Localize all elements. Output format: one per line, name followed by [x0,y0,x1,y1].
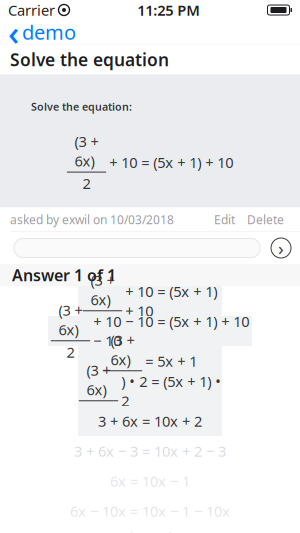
staticText: (3 + 6x) [90,270,114,309]
staticText: asked by exwil on 10/03/2018 [10,211,174,227]
staticText: 2 [94,402,102,422]
staticText [55,2,58,18]
staticText: 6x − 10x = 10x − 1 − 10x [70,501,230,521]
staticText: = 5x + 1 [145,351,197,371]
staticText: 3 + 6x − 3 = 10x + 2 − 3 [74,441,226,461]
staticText: 2 [82,174,90,193]
staticText: (3 + 6x) [110,330,134,369]
staticText: Solve the equation: [31,99,132,114]
staticText: 11:25 PM [137,0,200,20]
staticText: Carrier [8,0,55,20]
button[interactable] [14,238,260,257]
staticText: (3 + 6x) [86,360,110,399]
staticText: › [278,236,284,260]
staticText: (3 + 6x) [58,300,82,339]
button[interactable]: Edit [208,207,241,231]
staticText: Solve the equation [10,48,169,71]
staticText: ) • 2 = (5x + 1) • 2 [121,371,221,410]
staticText: + 10 = (5x + 1) + 10 [109,153,233,172]
staticText: 2 [66,342,74,362]
staticText: 2 [98,312,106,332]
staticText: (3 + 6x) [74,132,98,171]
staticText: Delete [247,211,284,227]
button[interactable]: ‹ [0,20,86,44]
staticText: demo [22,19,76,45]
staticText: 3 + 6x = 10x + 2 [98,411,202,431]
staticText: 2 [118,372,126,392]
staticText: 6x = 10x − 1 [110,471,190,491]
staticText: + 10 = (5x + 1) + 10 [125,281,217,320]
staticText: + 10 − 10 = (5x + 1) + 10 − 10 [93,311,249,350]
staticText: Edit [214,211,235,227]
staticText: Answer 1 of 1 [12,264,116,286]
button[interactable]: Submit answer [268,235,294,261]
button[interactable]: Delete [241,207,290,231]
staticText: ‹ [8,9,19,55]
